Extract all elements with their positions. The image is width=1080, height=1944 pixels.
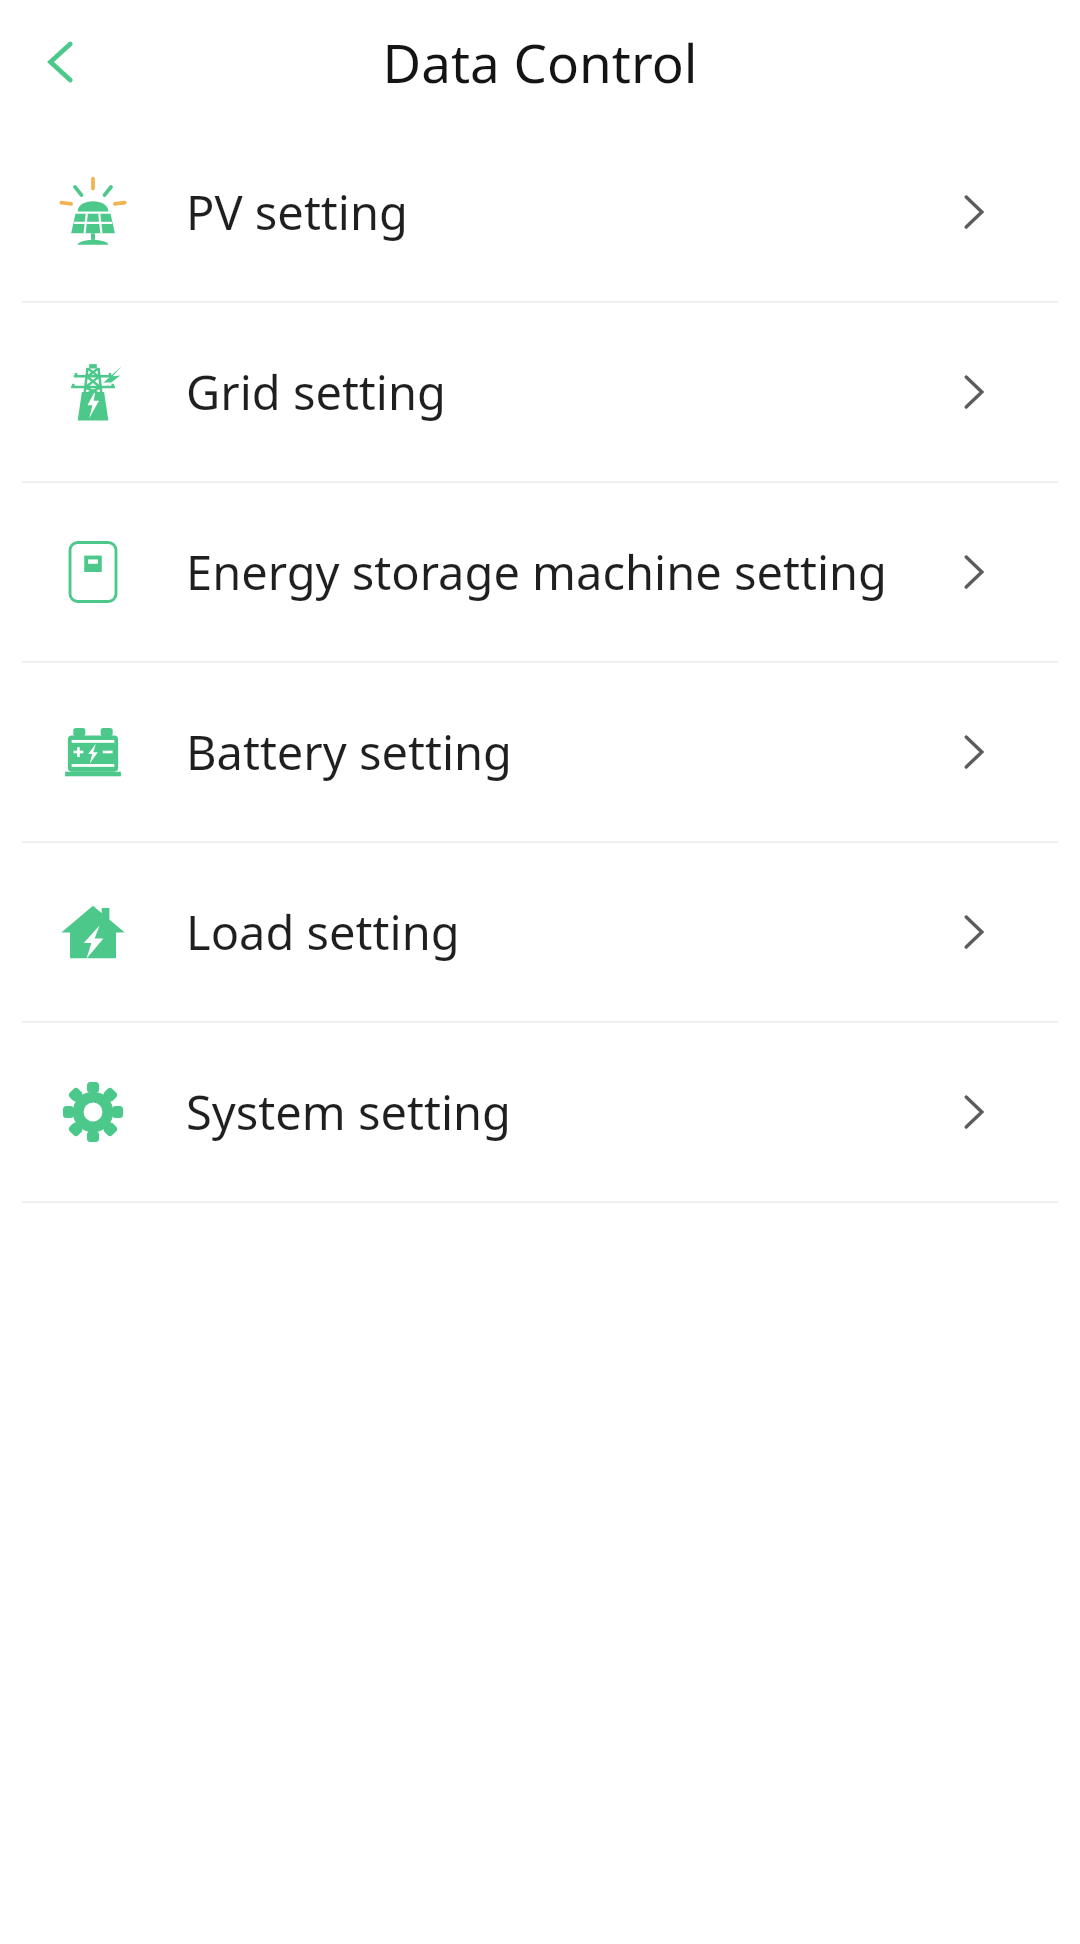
staticText: System setting: [186, 1080, 511, 1144]
button[interactable]: Back: [22, 23, 100, 101]
staticText: Data Control: [0, 26, 1080, 98]
button[interactable]: System setting: [0, 1023, 1080, 1201]
staticText: Grid setting: [186, 360, 446, 424]
staticText: Battery setting: [186, 720, 512, 784]
staticText: Load setting: [186, 900, 460, 964]
button[interactable]: PV setting: [0, 123, 1080, 301]
button[interactable]: Load setting: [0, 843, 1080, 1021]
staticText: Energy storage machine setting: [186, 540, 887, 604]
button[interactable]: Energy storage machine setting: [0, 483, 1080, 661]
button[interactable]: Grid setting: [0, 303, 1080, 481]
button[interactable]: Battery setting: [0, 663, 1080, 841]
staticText: PV setting: [186, 180, 408, 244]
